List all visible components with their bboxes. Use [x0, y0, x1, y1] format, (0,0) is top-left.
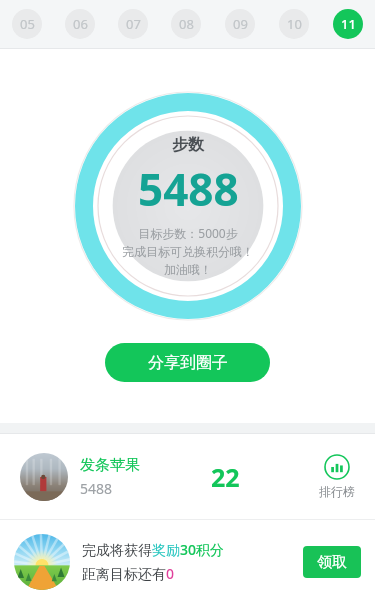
button[interactable]: 领取	[303, 546, 361, 578]
staticText: 完成目标可兑换积分哦！	[122, 244, 254, 259]
staticText: 目标步数：5000步	[138, 225, 238, 241]
button[interactable]: 分享到圈子	[105, 343, 270, 382]
staticText: 08	[179, 15, 194, 33]
staticText: 06	[73, 15, 88, 33]
staticText: 11	[341, 15, 356, 33]
staticText: 5488	[80, 479, 113, 498]
staticText: 09	[233, 15, 248, 33]
button[interactable]: 11	[333, 9, 363, 39]
staticText: 排行榜	[319, 484, 355, 499]
button[interactable]: 发条苹果	[0, 434, 375, 519]
staticText: 发条苹果	[80, 456, 140, 475]
staticText: 领取	[317, 553, 347, 572]
button[interactable]: 10	[279, 9, 309, 39]
staticText: 05	[20, 15, 35, 33]
button[interactable]: 09	[225, 9, 255, 39]
staticText: 加油哦！	[164, 262, 212, 277]
staticText: 距离目标还有0	[82, 564, 175, 583]
button[interactable]: 排行榜	[319, 454, 355, 499]
button[interactable]: 08	[171, 9, 201, 39]
staticText: 07	[126, 15, 141, 33]
staticText: 分享到圈子	[148, 353, 228, 373]
button[interactable]: 06	[65, 9, 95, 39]
staticText: 22	[211, 460, 240, 494]
staticText: 10	[287, 15, 302, 33]
staticText: 步数	[172, 135, 204, 155]
staticText: 5488	[138, 159, 239, 219]
button[interactable]: 05	[12, 9, 42, 39]
button[interactable]: 07	[118, 9, 148, 39]
staticText: 完成将获得奖励30积分	[82, 540, 225, 559]
